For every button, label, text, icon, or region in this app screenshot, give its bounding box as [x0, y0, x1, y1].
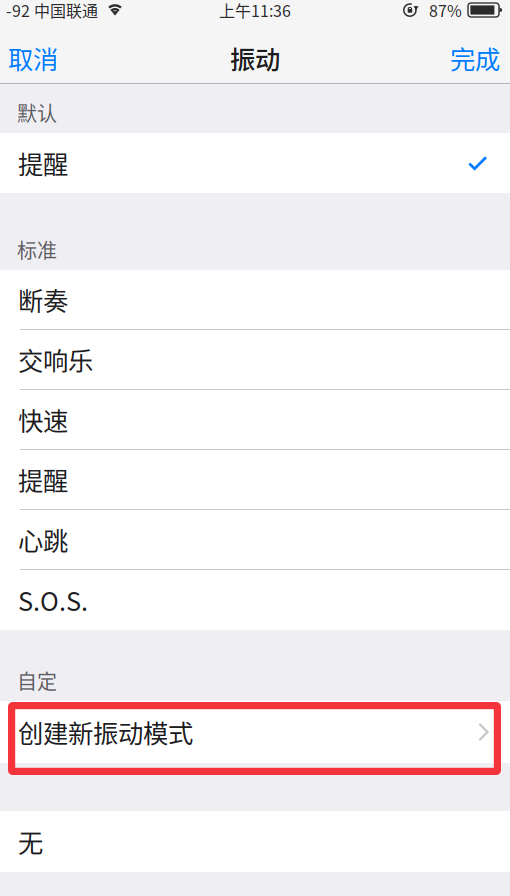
staticText: 交响乐 — [18, 341, 93, 378]
button[interactable]: 取消 — [0, 33, 70, 83]
staticText: 完成 — [450, 40, 500, 76]
staticText: 标准 — [17, 235, 57, 264]
button[interactable]: 交响乐 — [0, 330, 510, 390]
staticText: 提醒 — [18, 461, 68, 498]
staticText: 87% — [429, 0, 462, 22]
staticText: 取消 — [8, 40, 58, 76]
button[interactable]: 完成 — [438, 33, 510, 83]
button[interactable]: 快速 — [0, 390, 510, 450]
button[interactable]: S.O.S. — [0, 570, 510, 630]
staticText: -92 中国联通 — [6, 0, 98, 22]
button[interactable]: 提醒 — [0, 450, 510, 510]
staticText: 快速 — [18, 401, 68, 438]
staticText: 无 — [18, 823, 43, 860]
button[interactable]: 创建新振动模式 — [0, 701, 510, 763]
staticText: 自定 — [17, 666, 57, 695]
staticText: 振动 — [230, 40, 280, 76]
staticText: 默认 — [17, 98, 57, 127]
staticText: 心跳 — [18, 521, 68, 558]
button[interactable]: 断奏 — [0, 270, 510, 330]
button[interactable]: 无 — [0, 811, 510, 872]
staticText: 上午11:36 — [219, 0, 291, 22]
staticText: S.O.S. — [18, 582, 88, 618]
staticText: 创建新振动模式 — [18, 714, 193, 750]
button[interactable]: 提醒 — [0, 133, 510, 193]
staticText: 断奏 — [18, 281, 68, 318]
button[interactable]: 心跳 — [0, 510, 510, 570]
staticText: 提醒 — [18, 145, 68, 181]
